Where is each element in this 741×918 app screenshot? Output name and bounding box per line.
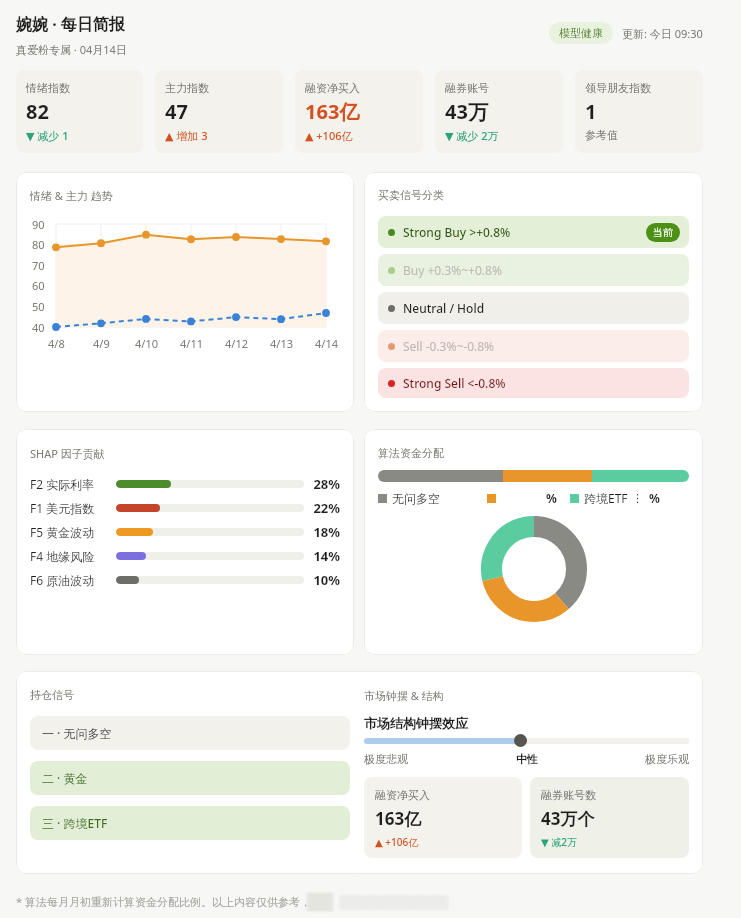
staticText: % [546, 490, 557, 506]
button[interactable]: 融券账号 [435, 70, 563, 153]
button[interactable]: 融券账号数 [530, 777, 689, 858]
staticText: 4/11 [180, 336, 203, 350]
staticText: 无问多空 [392, 491, 440, 506]
staticText: 融资净买入 [375, 788, 430, 802]
button[interactable]: 主力指数 [155, 70, 283, 153]
staticText: 163亿 [375, 807, 422, 830]
staticText: ▲ +106亿 [375, 835, 419, 849]
staticText: 三 · 跨境ETF [42, 815, 108, 831]
staticText: 真爱粉专属 · 04月14日 [16, 42, 127, 57]
staticText: 18% [310, 523, 340, 541]
button[interactable]: F6 原油波动 [30, 568, 340, 592]
staticText: 市场结构钟摆效应 [364, 715, 468, 731]
staticText: F2 实际利率 [30, 476, 116, 492]
staticText: 1 [585, 98, 597, 125]
staticText: 极度乐观 [645, 752, 689, 766]
staticText: 47 [165, 98, 188, 125]
button[interactable]: 三 · 跨境ETF [30, 806, 350, 840]
staticText: 90 [32, 217, 45, 231]
staticText: 中性 [516, 752, 538, 766]
staticText: Strong Sell <-0.8% [403, 375, 680, 391]
staticText: 4/8 [48, 336, 65, 350]
staticText: 50 [32, 299, 45, 313]
staticText: 婉婉 · 每日简报 [16, 13, 125, 35]
staticText: 4/14 [315, 336, 338, 350]
staticText: 4/9 [93, 336, 110, 350]
staticText: 43万 [445, 98, 488, 125]
staticText: ▼ 减少 1 [26, 128, 69, 143]
button[interactable]: 领导朋友指数 [575, 70, 703, 153]
staticText: 28% [310, 475, 340, 493]
staticText: 14% [310, 547, 340, 565]
staticText: % [649, 490, 660, 506]
staticText: F6 原油波动 [30, 572, 116, 588]
staticText: 领导朋友指数 [585, 81, 651, 95]
staticText: 4/13 [270, 336, 293, 350]
staticText: 参考值 [585, 128, 618, 142]
staticText: 主力指数 [165, 81, 209, 95]
button[interactable]: 二 · 黄金 [30, 761, 350, 795]
staticText: 融券账号 [445, 81, 489, 95]
button[interactable]: 模型健康 [549, 22, 613, 44]
staticText: ⋮ [632, 492, 643, 505]
button[interactable]: Strong Sell <-0.8% [378, 368, 689, 398]
staticText: 二 · 黄金 [42, 770, 88, 786]
staticText: Strong Buy >+0.8% [403, 224, 646, 240]
staticText: 10% [310, 571, 340, 589]
staticText: 22% [310, 499, 340, 517]
button[interactable]: F1 美元指数 [30, 496, 340, 520]
staticText: 更新: 今日 09:30 [622, 26, 703, 41]
staticText: 40 [32, 320, 45, 334]
button[interactable]: 融资净买入 [295, 70, 423, 153]
staticText: Sell -0.3%~-0.8% [403, 338, 680, 354]
staticText: 模型健康 [559, 26, 603, 40]
button[interactable]: Strong Buy >+0.8% [378, 216, 689, 248]
staticText: ▼ 减2万 [541, 835, 578, 849]
staticText: 当前 [653, 226, 673, 239]
staticText: 融券账号数 [541, 788, 596, 802]
button[interactable]: Neutral / Hold [378, 292, 689, 324]
button[interactable]: 情绪指数 [16, 70, 143, 153]
staticText: ▲ +106亿 [305, 128, 353, 143]
staticText: SHAP 因子贡献 [30, 446, 105, 461]
button[interactable]: 融资净买入 [364, 777, 522, 858]
button[interactable]: Sell -0.3%~-0.8% [378, 330, 689, 362]
staticText: 一 · 无问多空 [42, 725, 112, 741]
staticText: 80 [32, 237, 45, 251]
staticText: F5 黄金波动 [30, 524, 116, 540]
staticText: ▼ 减少 2万 [445, 128, 499, 143]
staticText: 43万个 [541, 807, 595, 830]
button[interactable]: F5 黄金波动 [30, 520, 340, 544]
staticText: 算法资金分配 [378, 446, 444, 460]
staticText: Buy +0.3%~+0.8% [403, 262, 680, 278]
staticText: Neutral / Hold [403, 300, 680, 316]
button[interactable]: F2 实际利率 [30, 472, 340, 496]
button[interactable]: 一 · 无问多空 [30, 716, 350, 750]
button[interactable]: Buy +0.3%~+0.8% [378, 254, 689, 286]
staticText: 60 [32, 278, 45, 292]
staticText: 情绪指数 [26, 81, 70, 95]
staticText: 市场钟摆 & 结构 [364, 688, 444, 703]
staticText: * 算法每月月初重新计算资金分配比例。以上内容仅供参考， [16, 894, 311, 909]
staticText: 持仓信号 [30, 688, 74, 702]
staticText: 买卖信号分类 [378, 188, 444, 202]
staticText: 82 [26, 98, 49, 125]
staticText: 163亿 [305, 98, 360, 125]
staticText: 融资净买入 [305, 81, 360, 95]
staticText: F1 美元指数 [30, 500, 116, 516]
button[interactable]: F4 地缘风险 [30, 544, 340, 568]
staticText: 4/10 [135, 336, 158, 350]
staticText: 情绪 & 主力 趋势 [30, 188, 113, 203]
staticText: ▲ 增加 3 [165, 128, 208, 143]
staticText: 极度悲观 [364, 752, 408, 766]
staticText: 跨境ETF [584, 490, 628, 506]
staticText: 4/12 [225, 336, 248, 350]
staticText: F4 地缘风险 [30, 548, 116, 564]
staticText: 70 [32, 258, 45, 272]
